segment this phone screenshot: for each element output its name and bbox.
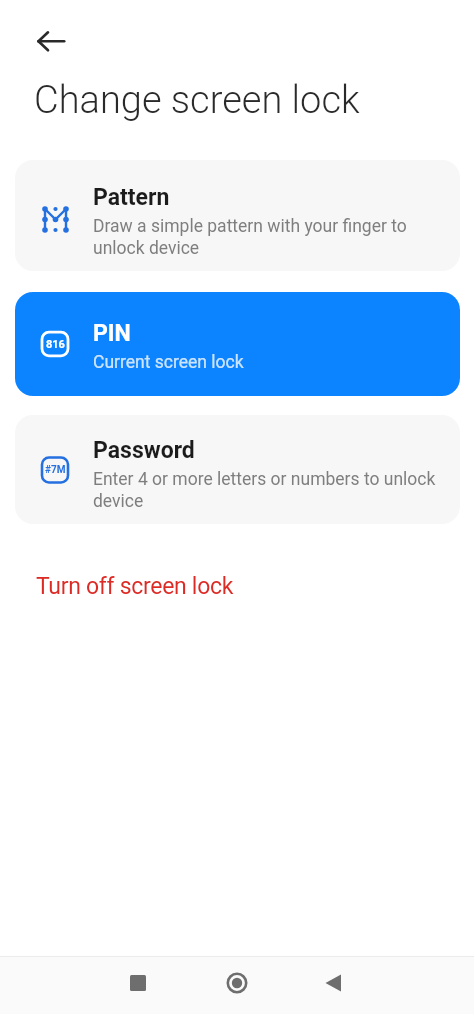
button[interactable] — [122, 973, 154, 1005]
button[interactable]: #7M — [15, 415, 460, 524]
button[interactable] — [221, 973, 253, 1005]
button[interactable]: Turn off screen lock — [36, 573, 234, 600]
staticText: Current screen lock — [93, 352, 244, 373]
staticText: Draw a simple pattern with your finger t… — [93, 216, 442, 258]
button[interactable]: 816 — [15, 292, 460, 396]
button[interactable] — [27, 20, 71, 62]
staticText: Enter 4 or more letters or numbers to un… — [93, 469, 442, 511]
staticText: Password — [93, 437, 195, 464]
staticText: #7M — [45, 464, 66, 476]
staticText: PIN — [93, 320, 131, 347]
button[interactable] — [317, 973, 349, 1005]
button[interactable]: Pattern — [15, 160, 460, 271]
staticText: Change screen lock — [34, 78, 360, 123]
staticText: Turn off screen lock — [36, 573, 234, 600]
staticText: Pattern — [93, 184, 170, 211]
staticText: 816 — [46, 338, 65, 351]
